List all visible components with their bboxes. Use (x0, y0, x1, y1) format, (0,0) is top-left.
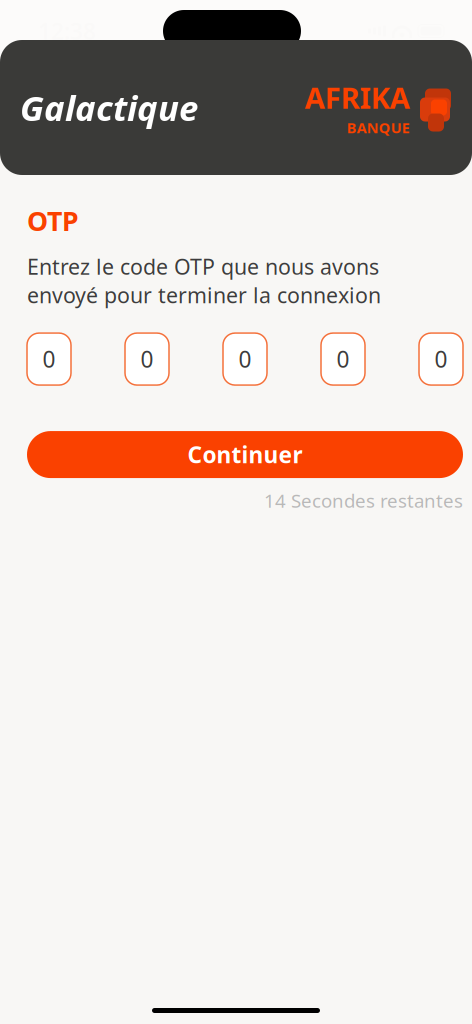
staticText: Galactique (20, 84, 198, 130)
staticText: 12:38 (38, 16, 96, 46)
button[interactable]: 0 (223, 333, 267, 385)
staticText: OTP (27, 203, 79, 238)
button[interactable]: 0 (27, 333, 71, 385)
button[interactable]: Continuer (27, 431, 463, 478)
button[interactable]: 0 (125, 333, 169, 385)
button[interactable]: 0 (321, 333, 365, 385)
staticText: Continuer (187, 439, 302, 470)
staticText: Entrez le code OTP que nous avons envoyé… (27, 252, 381, 309)
staticText: 0 (140, 344, 153, 374)
staticText: 0 (238, 344, 251, 374)
staticText: AFRIKA (305, 78, 410, 117)
staticText: BANQUE (347, 118, 410, 137)
staticText: 0 (42, 344, 55, 374)
staticText: 14 Secondes restantes (264, 488, 463, 513)
staticText: 0 (336, 344, 349, 374)
staticText: 0 (434, 344, 447, 374)
button[interactable]: 0 (419, 333, 463, 385)
